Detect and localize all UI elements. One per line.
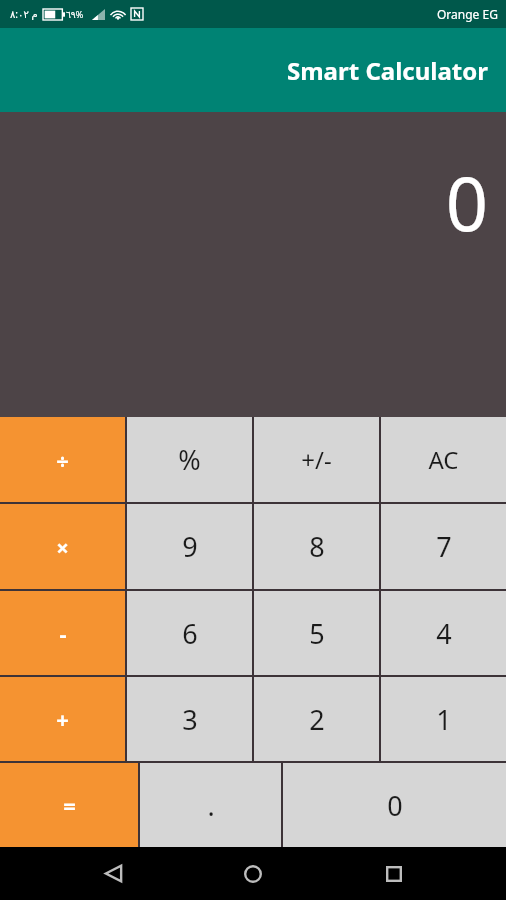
button[interactable]: Home xyxy=(225,847,281,900)
staticText: 2 xyxy=(309,701,325,738)
button[interactable]: 9 xyxy=(127,504,252,589)
button[interactable]: 0 xyxy=(283,763,506,847)
staticText: + xyxy=(56,704,69,734)
button[interactable]: 2 xyxy=(254,677,379,761)
staticText: ٦٩% xyxy=(66,8,84,20)
button[interactable]: Divide xyxy=(0,417,125,502)
staticText: ÷ xyxy=(56,445,69,475)
button[interactable]: Multiply xyxy=(0,504,125,589)
staticText: 6 xyxy=(182,615,198,652)
staticText: × xyxy=(56,532,69,562)
button[interactable]: Back xyxy=(85,847,141,900)
button[interactable]: AC xyxy=(381,417,506,502)
staticText: Smart Calculator xyxy=(287,54,488,87)
staticText: = xyxy=(63,790,76,820)
staticText: - xyxy=(59,618,67,648)
button[interactable]: Minus xyxy=(0,591,125,675)
button[interactable]: 1 xyxy=(381,677,506,761)
staticText: 0 xyxy=(445,152,488,253)
staticText: % xyxy=(178,441,201,478)
staticText: 1 xyxy=(436,701,452,738)
staticText: 5 xyxy=(309,615,325,652)
staticText: 7 xyxy=(436,528,452,565)
button[interactable]: +/- xyxy=(254,417,379,502)
staticText: 3 xyxy=(182,701,198,738)
button[interactable]: 8 xyxy=(254,504,379,589)
staticText: 0 xyxy=(387,787,403,824)
staticText: AC xyxy=(428,443,459,476)
staticText: . xyxy=(207,787,215,824)
button[interactable]: Equals xyxy=(0,763,138,847)
staticText: م ٨:٠٢ xyxy=(10,7,38,21)
button[interactable]: Plus xyxy=(0,677,125,761)
button[interactable]: 5 xyxy=(254,591,379,675)
button[interactable]: 7 xyxy=(381,504,506,589)
staticText: +/- xyxy=(301,443,332,476)
button[interactable]: % xyxy=(127,417,252,502)
staticText: Orange EG xyxy=(437,6,498,22)
staticText: 8 xyxy=(309,528,325,565)
button[interactable]: 6 xyxy=(127,591,252,675)
button[interactable]: 4 xyxy=(381,591,506,675)
button[interactable]: 3 xyxy=(127,677,252,761)
staticText: 4 xyxy=(436,615,452,652)
button[interactable]: . xyxy=(140,763,281,847)
staticText: 9 xyxy=(182,528,198,565)
button[interactable]: Recent apps xyxy=(366,847,422,900)
